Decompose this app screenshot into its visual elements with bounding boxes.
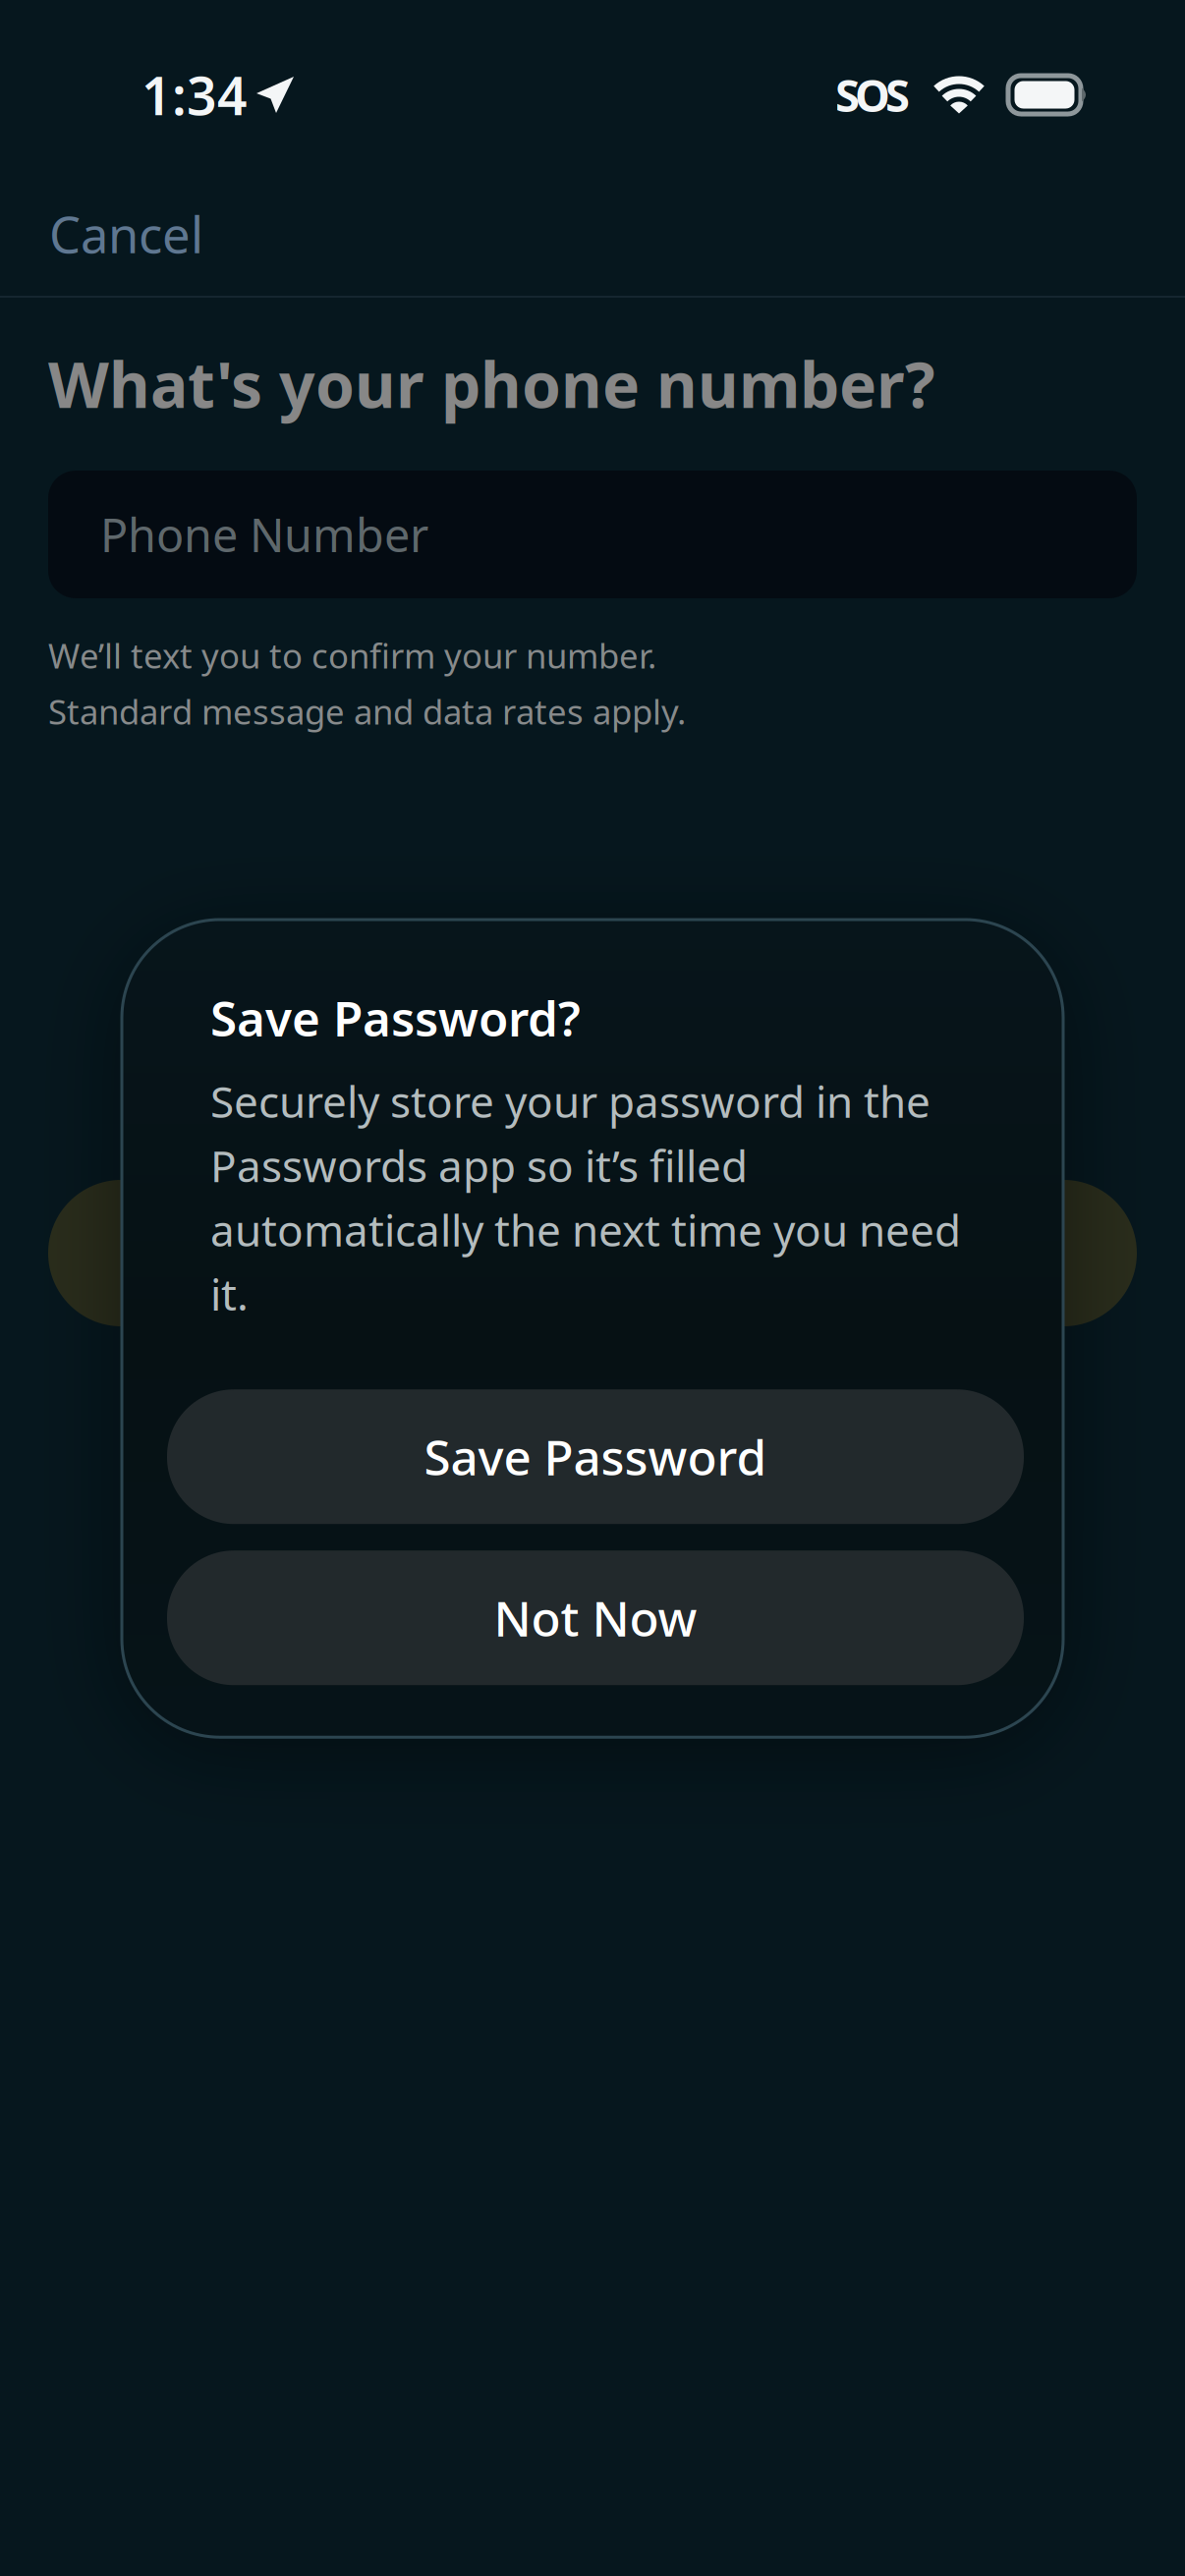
staticText: Securely store your password in the Pass… xyxy=(210,1072,961,1323)
button[interactable]: Cancel xyxy=(0,172,1185,296)
staticText: Save Password? xyxy=(210,985,581,1050)
staticText: 1:34 xyxy=(141,60,248,130)
button[interactable]: Save Password xyxy=(167,1389,1024,1524)
button[interactable]: Not Now xyxy=(167,1551,1024,1685)
staticText: We’ll text you to confirm your number. S… xyxy=(48,633,686,734)
staticText: Not Now xyxy=(494,1586,697,1650)
staticText: Phone Number xyxy=(100,504,428,565)
staticText: Save Password xyxy=(424,1425,767,1489)
staticText: SOS xyxy=(835,65,910,124)
staticText: Cancel xyxy=(49,201,203,267)
staticText: What's your phone number? xyxy=(48,342,935,425)
